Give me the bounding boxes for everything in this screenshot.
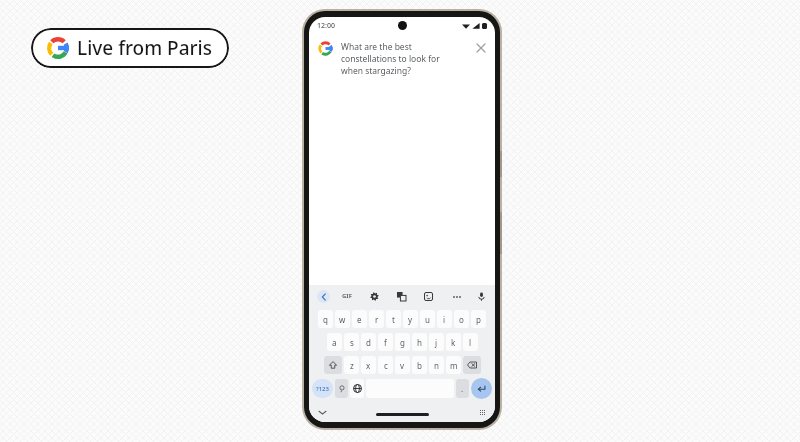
staticText: h [417, 337, 422, 348]
staticText: r [375, 314, 379, 325]
button[interactable]: Close [474, 41, 488, 55]
button[interactable]: f [378, 333, 393, 351]
button[interactable]: Translate [396, 291, 407, 302]
staticText: What are the best [341, 41, 412, 53]
button[interactable]: s [344, 333, 359, 351]
staticText: x [366, 360, 371, 371]
button[interactable]: e [352, 310, 367, 328]
staticText: t [392, 314, 395, 325]
button[interactable]: h [412, 333, 427, 351]
staticText: o [459, 314, 464, 325]
button[interactable]: y [403, 310, 418, 328]
button[interactable]: n [429, 356, 444, 374]
staticText: l [469, 337, 472, 348]
staticText: ?123 [316, 385, 329, 393]
staticText: e [357, 314, 362, 325]
button[interactable]: r [369, 310, 384, 328]
staticText: a [332, 337, 337, 348]
staticText: when stargazing? [341, 65, 411, 77]
staticText: j [435, 337, 438, 348]
staticText: 12:00 [317, 21, 335, 31]
button[interactable]: u [420, 310, 435, 328]
staticText: . [461, 383, 464, 394]
staticText: k [451, 337, 456, 348]
staticText: v [400, 360, 405, 371]
button[interactable]: p [471, 310, 486, 328]
button[interactable]: g [395, 333, 410, 351]
button[interactable]: Back [317, 290, 330, 303]
staticText: b [417, 360, 422, 371]
staticText: m [450, 360, 458, 371]
staticText: Live from Paris [77, 35, 212, 61]
staticText: c [384, 360, 388, 371]
button[interactable]: . [456, 379, 469, 398]
button[interactable]: Enter [471, 378, 492, 399]
button[interactable]: Settings [369, 291, 380, 302]
button[interactable]: Change language [350, 379, 364, 398]
staticText: z [350, 360, 354, 371]
button[interactable]: ?123 [312, 379, 333, 398]
button[interactable]: t [386, 310, 401, 328]
button[interactable]: w [335, 310, 350, 328]
button[interactable]: b [412, 356, 427, 374]
button[interactable]: d [361, 333, 376, 351]
button[interactable]: Backspace [463, 356, 481, 374]
button[interactable]: z [344, 356, 359, 374]
button[interactable]: Shift [324, 356, 342, 374]
button[interactable]: l [463, 333, 478, 351]
button[interactable]: c [378, 356, 393, 374]
staticText: GIF [342, 292, 352, 300]
button[interactable]: m [446, 356, 461, 374]
button[interactable]: Live from Paris [31, 28, 229, 68]
button[interactable]: o [454, 310, 469, 328]
staticText: i [443, 314, 446, 325]
staticText: u [425, 314, 430, 325]
button[interactable]: GIF [342, 292, 352, 300]
button[interactable]: Keyboard switcher [477, 407, 487, 417]
staticText: q [323, 314, 328, 325]
staticText: w [339, 314, 346, 325]
button[interactable]: Stickers [423, 291, 434, 302]
button[interactable]: k [446, 333, 461, 351]
button[interactable]: q [318, 310, 333, 328]
button[interactable]: Emoji [335, 379, 348, 398]
button[interactable]: Hide keyboard [317, 407, 327, 417]
staticText: f [384, 337, 387, 348]
button[interactable]: a [327, 333, 342, 351]
staticText: n [434, 360, 439, 371]
button[interactable]: i [437, 310, 452, 328]
button[interactable]: x [361, 356, 376, 374]
button[interactable]: v [395, 356, 410, 374]
staticText: constellations to look for [341, 53, 440, 65]
staticText: d [366, 337, 371, 348]
staticText: p [476, 314, 481, 325]
staticText: y [408, 314, 413, 325]
button[interactable]: More options [451, 291, 462, 302]
staticText: s [350, 337, 354, 348]
button[interactable]: Voice input [476, 291, 487, 302]
button[interactable]: j [429, 333, 444, 351]
staticText: g [400, 337, 405, 348]
